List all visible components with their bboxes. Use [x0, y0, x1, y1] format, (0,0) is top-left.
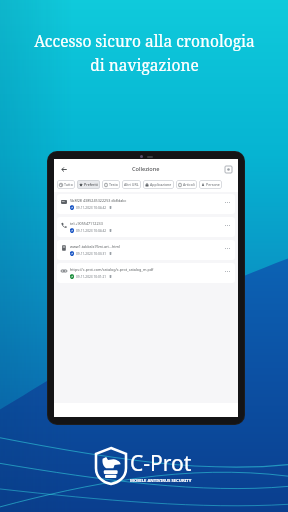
button[interactable]: Back	[58, 163, 71, 176]
staticText: www1.tabbslx76mi.art...html	[70, 244, 120, 249]
staticText: Persone	[206, 182, 220, 187]
staticText: Collezione	[132, 165, 160, 173]
button[interactable]: tel:+905547112233	[57, 217, 235, 237]
staticText: 09-11-2023 10:04:42	[76, 229, 107, 233]
staticText: Articoli	[183, 182, 195, 187]
staticText: https://c-prot.com/catalog/c-prot_catalo…	[70, 267, 154, 272]
button[interactable]: https://c-prot.com/catalog/c-prot_catalo…	[57, 263, 235, 283]
staticText: 5b8f28 4385245322253 db8dabc	[70, 198, 127, 203]
button[interactable]: More options	[224, 199, 231, 206]
staticText: tel:+905547112233	[70, 221, 103, 226]
staticText: 09-11-2023 10:04:42	[76, 206, 107, 210]
button[interactable]: Tutto	[57, 180, 75, 189]
staticText: 09-11-2023 10:03:31	[76, 252, 107, 256]
button[interactable]: Articoli	[176, 180, 197, 189]
button[interactable]: Applicazione	[143, 180, 174, 189]
button[interactable]: Altri URL	[122, 180, 141, 189]
button[interactable]: More options	[224, 268, 231, 275]
staticText: di navigazione	[90, 54, 199, 75]
staticText: Testo	[109, 182, 118, 187]
button[interactable]: Testo	[102, 180, 120, 189]
staticText: Applicazione	[150, 182, 172, 187]
staticText: 09-11-2023 10:01:21	[76, 275, 107, 279]
button[interactable]: www1.tabbslx76mi.art...html	[57, 240, 235, 260]
staticText: Preferiti	[84, 182, 98, 187]
button[interactable]: More options	[224, 245, 231, 252]
button[interactable]: 5b8f28 4385245322253 db8dabc	[57, 194, 235, 214]
button[interactable]: More options	[224, 222, 231, 229]
staticText: Altri URL	[124, 182, 139, 187]
button[interactable]: Persone	[199, 180, 222, 189]
staticText: MOBILE ANTIVIRUS SECURITY	[130, 478, 192, 484]
button[interactable]: Settings	[223, 164, 234, 175]
staticText: Accesso sicuro alla cronologia	[34, 30, 255, 51]
button[interactable]: Preferiti	[77, 180, 100, 189]
staticText: Tutto	[64, 182, 73, 187]
staticText: C-Prot	[130, 449, 192, 478]
